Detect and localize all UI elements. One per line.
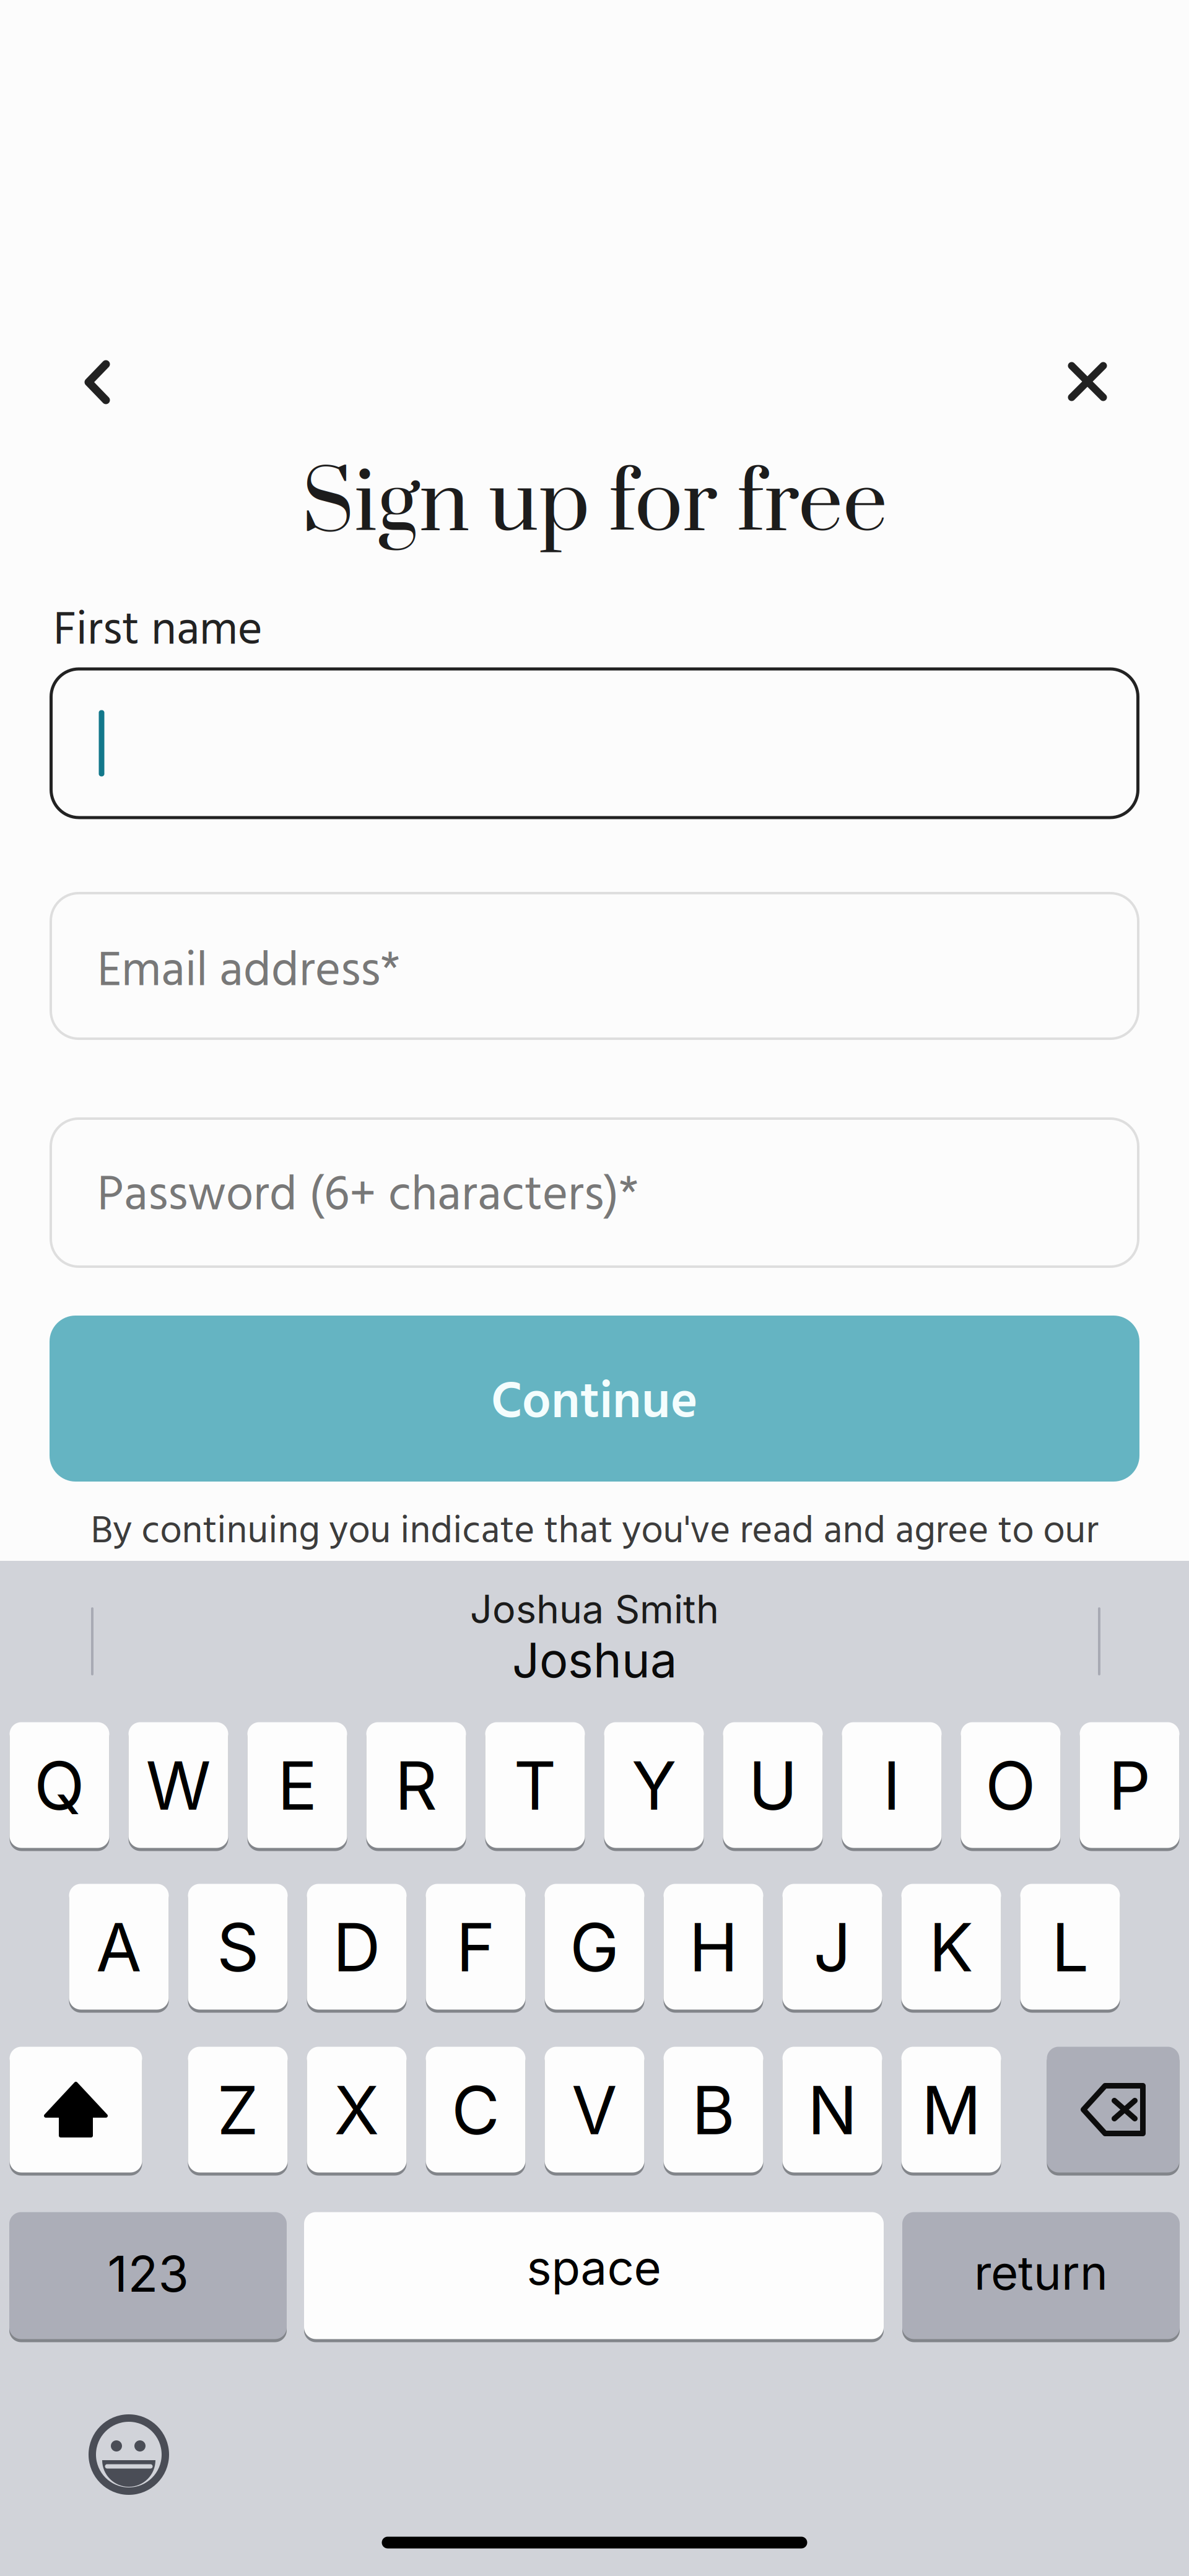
button[interactable]: Close — [1038, 332, 1137, 431]
staticText: By continuing you indicate that you've r… — [91, 1501, 1098, 1563]
button[interactable]: Y — [604, 1721, 704, 1849]
button[interactable]: O — [961, 1721, 1061, 1849]
staticText: Joshua — [512, 1631, 677, 1689]
staticText: C — [451, 2070, 500, 2150]
staticText: R — [395, 1746, 438, 1826]
staticText: B — [692, 2070, 735, 2150]
staticText: return — [974, 2244, 1108, 2301]
staticText: K — [929, 1907, 973, 1987]
staticText: Z — [217, 2070, 259, 2150]
staticText: Joshua Smith — [470, 1586, 719, 1633]
button[interactable]: D — [307, 1882, 407, 2011]
button[interactable]: U — [723, 1721, 823, 1849]
button[interactable]: I — [842, 1721, 942, 1849]
button[interactable]: V — [545, 2045, 644, 2174]
staticText: Continue — [491, 1363, 698, 1445]
staticText: J — [813, 1907, 851, 1987]
button[interactable]: W — [128, 1721, 228, 1849]
button[interactable]: B — [664, 2045, 763, 2174]
staticText: Email address* — [97, 934, 400, 1012]
button[interactable]: M — [901, 2045, 1001, 2174]
staticText: U — [748, 1746, 797, 1826]
button[interactable]: T — [485, 1721, 585, 1849]
button[interactable]: N — [782, 2045, 882, 2174]
button[interactable]: 123 — [9, 2211, 287, 2341]
staticText: D — [333, 1907, 381, 1987]
button[interactable]: X — [307, 2045, 407, 2174]
button[interactable] — [10, 2045, 142, 2174]
staticText: G — [570, 1907, 619, 1987]
button[interactable]: H — [664, 1882, 763, 2011]
staticText: Y — [632, 1746, 676, 1826]
button[interactable]: C — [426, 2045, 525, 2174]
button[interactable]: Q — [10, 1721, 109, 1849]
button[interactable]: A — [69, 1882, 169, 2011]
staticText: space — [527, 2239, 661, 2296]
staticText: X — [334, 2070, 379, 2150]
staticText: Q — [34, 1746, 85, 1826]
staticText: F — [456, 1907, 495, 1987]
button[interactable]: space — [304, 2211, 884, 2341]
staticText: W — [146, 1746, 211, 1826]
staticText: O — [985, 1746, 1036, 1826]
button[interactable]: Continue — [50, 1316, 1139, 1482]
button[interactable]: K — [901, 1882, 1001, 2011]
staticText: L — [1052, 1907, 1089, 1987]
button[interactable]: P — [1080, 1721, 1179, 1849]
staticText: A — [96, 1907, 142, 1987]
staticText: H — [689, 1907, 738, 1987]
staticText: V — [572, 2070, 617, 2150]
staticText: T — [514, 1746, 556, 1826]
button[interactable]: Z — [188, 2045, 288, 2174]
staticText: S — [217, 1907, 259, 1987]
staticText: N — [808, 2070, 857, 2150]
button[interactable]: return — [902, 2211, 1180, 2341]
staticText: Sign up for free — [302, 451, 887, 558]
staticText: M — [921, 2070, 981, 2150]
button[interactable]: Back — [48, 333, 147, 432]
button[interactable]: G — [545, 1882, 644, 2011]
button[interactable]: E — [247, 1721, 347, 1849]
staticText: I — [883, 1746, 901, 1826]
button[interactable]: S — [188, 1882, 288, 2011]
button[interactable]: L — [1020, 1882, 1120, 2011]
button[interactable] — [1047, 2045, 1179, 2174]
button[interactable]: J — [782, 1882, 882, 2011]
staticText: 123 — [107, 2244, 189, 2304]
button[interactable]: R — [366, 1721, 466, 1849]
button[interactable]: Emoji keyboard — [76, 2402, 181, 2507]
staticText: P — [1108, 1746, 1151, 1826]
staticText: Password (6+ characters)* — [97, 1158, 638, 1236]
staticText: First name — [53, 594, 263, 669]
staticText: E — [277, 1746, 317, 1826]
button[interactable]: F — [426, 1882, 525, 2011]
